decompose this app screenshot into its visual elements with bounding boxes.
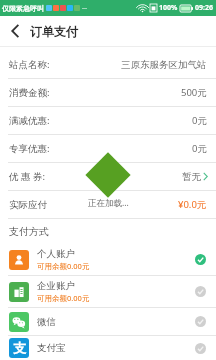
button[interactable]: 专享优惠: bbox=[0, 135, 216, 162]
staticText: 三原东服务区加气站 bbox=[121, 59, 207, 71]
button[interactable]: 实际应付 bbox=[0, 191, 216, 218]
staticText: 支付方式 bbox=[9, 225, 49, 238]
staticText: 满减优惠: bbox=[9, 114, 50, 127]
button[interactable]: 优 惠 券: bbox=[0, 163, 216, 190]
staticText: 500元 bbox=[181, 86, 207, 99]
staticText: 正在加载... bbox=[88, 197, 129, 209]
staticText: 可用余额0.00元 bbox=[37, 293, 90, 303]
staticText: 微信 bbox=[37, 316, 56, 328]
staticText: 09:26 bbox=[195, 3, 213, 13]
staticText: 站点名称: bbox=[9, 58, 50, 71]
button[interactable]: 企业账户 bbox=[0, 276, 216, 307]
staticText: 消费金额: bbox=[9, 86, 50, 99]
staticText: 订单支付 bbox=[30, 24, 78, 39]
staticText: 支付宝 bbox=[37, 342, 66, 354]
staticText: 个人账户 bbox=[37, 248, 75, 260]
button[interactable]: 满减优惠: bbox=[0, 107, 216, 134]
staticText: 实际应付 bbox=[9, 199, 47, 211]
staticText: 优 惠 券: bbox=[9, 170, 45, 183]
button[interactable]: 站点名称: bbox=[0, 51, 216, 78]
staticText: ¥0.0元 bbox=[178, 198, 207, 211]
staticText: 暂无 bbox=[182, 171, 201, 183]
staticText: 0元 bbox=[192, 114, 207, 127]
staticText: 支 bbox=[13, 340, 26, 356]
button[interactable]: 支 bbox=[0, 336, 216, 360]
button[interactable]: 消费金额: bbox=[0, 79, 216, 106]
staticText: 可用余额0.00元 bbox=[37, 261, 90, 271]
staticText: 仅限紧急呼叫 bbox=[2, 4, 44, 13]
staticText: 企业账户 bbox=[37, 280, 75, 292]
button[interactable]: 返回 bbox=[0, 16, 30, 46]
staticText: 0元 bbox=[192, 142, 207, 155]
button[interactable]: 微信 bbox=[0, 308, 216, 335]
button[interactable]: 个人账户 bbox=[0, 244, 216, 275]
staticText: 专享优惠: bbox=[9, 142, 50, 155]
staticText: 100% bbox=[159, 3, 178, 13]
